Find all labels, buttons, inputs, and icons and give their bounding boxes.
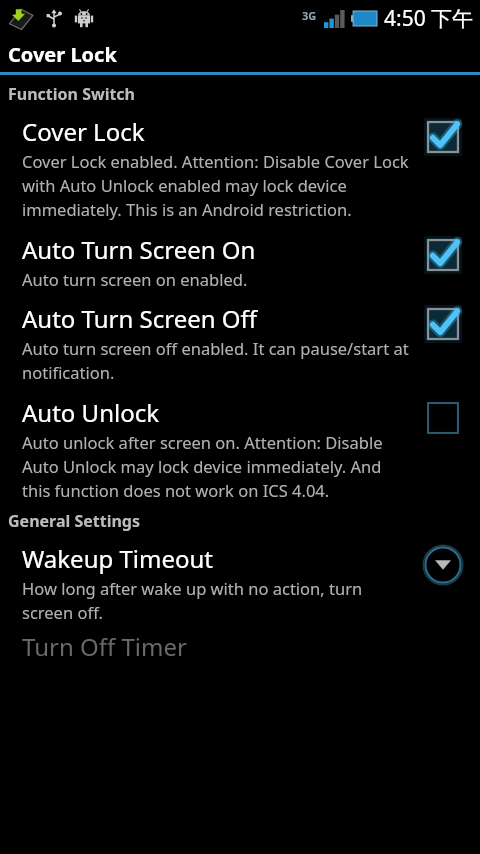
- button[interactable]: Turn Off Timer: [0, 630, 480, 670]
- staticText: Auto unlock after screen on. Attention: …: [22, 431, 410, 502]
- staticText: Auto turn screen on enabled.: [22, 268, 248, 290]
- staticText: 3G: [302, 8, 317, 23]
- staticText: Cover Lock: [8, 41, 117, 68]
- staticText: Cover Lock: [22, 115, 145, 148]
- staticText: General Settings: [8, 510, 141, 532]
- button[interactable]: Checked: [421, 233, 465, 277]
- staticText: Wakeup Timeout: [22, 542, 214, 575]
- staticText: Function Switch: [8, 83, 136, 105]
- button[interactable]: Wakeup Timeout: [0, 536, 480, 630]
- staticText: Cover Lock enabled. Attention: Disable C…: [22, 150, 410, 221]
- staticText: Turn Off Timer: [22, 630, 187, 663]
- staticText: Auto Turn Screen Off: [22, 302, 258, 335]
- staticText: Auto Unlock: [22, 396, 160, 429]
- button[interactable]: Open list: [420, 542, 466, 588]
- staticText: Auto turn screen off enabled. It can pau…: [22, 337, 410, 384]
- button[interactable]: Checked: [421, 115, 465, 159]
- button[interactable]: Auto Unlock: [0, 390, 480, 508]
- button[interactable]: Checked: [421, 302, 465, 346]
- staticText: How long after wake up with no action, t…: [22, 577, 410, 624]
- button[interactable]: Unchecked: [421, 396, 465, 440]
- staticText: Auto Turn Screen On: [22, 233, 256, 266]
- button[interactable]: Auto Turn Screen On: [0, 227, 480, 296]
- button[interactable]: Cover Lock: [0, 109, 480, 227]
- button[interactable]: Auto Turn Screen Off: [0, 296, 480, 390]
- staticText: 4:50 下午: [384, 4, 474, 33]
